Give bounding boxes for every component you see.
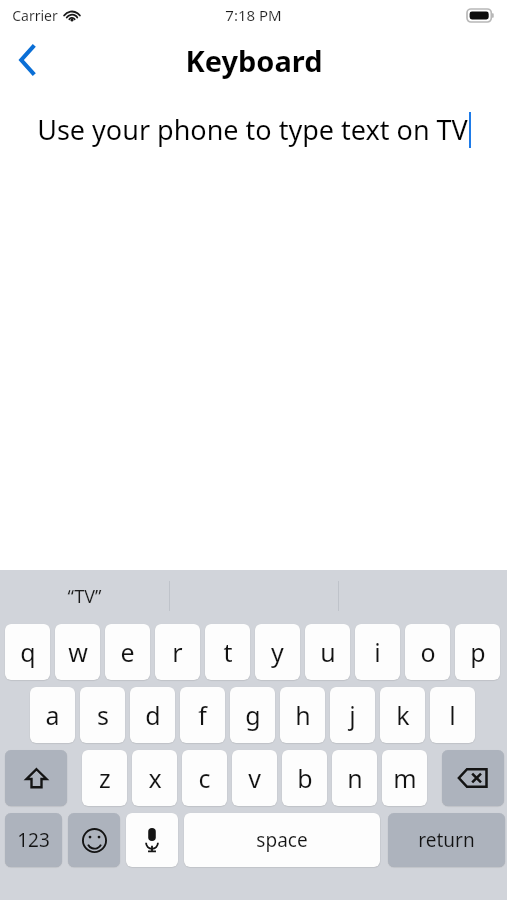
staticText: space: [256, 827, 308, 853]
staticText: o: [420, 635, 436, 669]
staticText: s: [97, 698, 109, 732]
button[interactable]: Backspace: [442, 750, 504, 806]
button[interactable]: w: [55, 624, 100, 680]
button[interactable]: q: [5, 624, 50, 680]
staticText: Use your phone to type text on TV: [37, 111, 468, 148]
staticText: x: [148, 761, 162, 795]
staticText: 123: [17, 827, 50, 853]
button[interactable]: t: [205, 624, 250, 680]
staticText: g: [245, 698, 261, 732]
button[interactable]: return: [388, 813, 505, 867]
button[interactable]: l: [430, 687, 475, 743]
button[interactable]: h: [280, 687, 325, 743]
staticText: Carrier: [12, 6, 58, 25]
staticText: t: [223, 635, 233, 669]
button[interactable]: Dictation: [126, 813, 178, 867]
staticText: w: [68, 635, 88, 669]
button[interactable]: k: [380, 687, 425, 743]
button[interactable]: Back: [0, 33, 54, 87]
staticText: f: [198, 698, 207, 732]
staticText: “TV”: [67, 584, 102, 609]
staticText: m: [393, 761, 417, 795]
staticText: c: [198, 761, 211, 795]
button[interactable]: e: [105, 624, 150, 680]
button[interactable]: z: [82, 750, 127, 806]
button[interactable]: g: [230, 687, 275, 743]
button[interactable]: a: [30, 687, 75, 743]
button[interactable]: v: [232, 750, 277, 806]
staticText: v: [248, 761, 261, 795]
staticText: j: [349, 698, 356, 732]
button[interactable]: space: [184, 813, 380, 867]
button[interactable]: Use your phone to type text on TV: [0, 90, 507, 168]
button[interactable]: x: [132, 750, 177, 806]
staticText: l: [449, 698, 456, 732]
button[interactable]: o: [405, 624, 450, 680]
button[interactable]: n: [332, 750, 377, 806]
staticText: d: [145, 698, 161, 732]
button[interactable]: j: [330, 687, 375, 743]
button[interactable]: Emoji: [68, 813, 120, 867]
button[interactable]: c: [182, 750, 227, 806]
staticText: p: [470, 635, 486, 669]
button[interactable]: b: [282, 750, 327, 806]
button[interactable]: 123: [5, 813, 62, 867]
staticText: z: [99, 761, 111, 795]
button[interactable]: y: [255, 624, 300, 680]
staticText: b: [297, 761, 313, 795]
button[interactable]: i: [355, 624, 400, 680]
button[interactable]: Shift: [5, 750, 67, 806]
staticText: r: [172, 635, 183, 669]
staticText: Keyboard: [185, 41, 323, 80]
staticText: 7:18 PM: [225, 5, 282, 25]
staticText: k: [396, 698, 410, 732]
staticText: return: [418, 827, 475, 853]
button[interactable]: m: [382, 750, 427, 806]
button[interactable]: “TV”: [0, 570, 169, 622]
button[interactable]: p: [455, 624, 500, 680]
button[interactable]: f: [180, 687, 225, 743]
staticText: n: [347, 761, 363, 795]
button[interactable]: s: [80, 687, 125, 743]
button[interactable]: d: [130, 687, 175, 743]
button[interactable]: u: [305, 624, 350, 680]
button[interactable]: r: [155, 624, 200, 680]
staticText: y: [271, 635, 284, 669]
staticText: i: [374, 635, 381, 669]
staticText: u: [320, 635, 336, 669]
staticText: a: [45, 698, 60, 732]
staticText: e: [120, 635, 135, 669]
staticText: q: [20, 635, 36, 669]
staticText: h: [295, 698, 311, 732]
